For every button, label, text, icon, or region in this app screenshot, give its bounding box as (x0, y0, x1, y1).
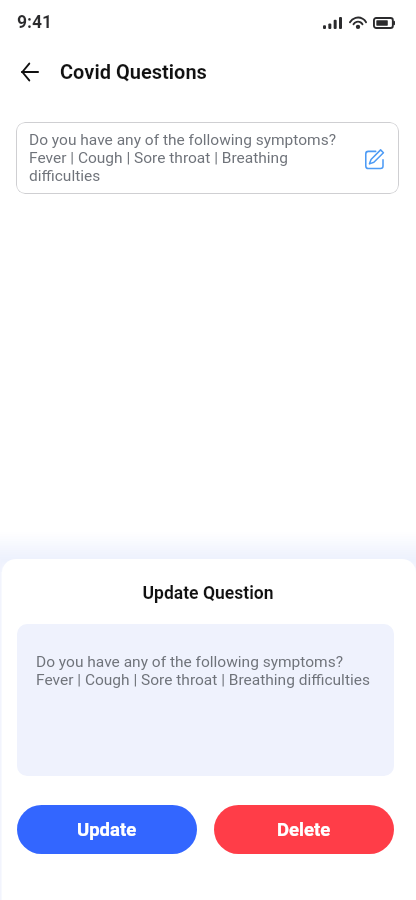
staticText: 9:41 (17, 12, 53, 33)
button[interactable]: Back (13, 55, 47, 89)
button[interactable]: Do you have any of the following symptom… (16, 122, 399, 194)
staticText: Delete (277, 819, 331, 841)
staticText: Do you have any of the following symptom… (29, 131, 355, 185)
button[interactable]: Update (17, 805, 197, 854)
button[interactable]: Edit question (361, 145, 387, 171)
button[interactable]: Do you have any of the following symptom… (17, 624, 394, 776)
button[interactable]: Delete (214, 805, 394, 854)
staticText: Update Question (0, 583, 416, 604)
staticText: Update (77, 819, 137, 841)
staticText: Covid Questions (60, 60, 207, 83)
staticText: Do you have any of the following symptom… (36, 653, 370, 689)
